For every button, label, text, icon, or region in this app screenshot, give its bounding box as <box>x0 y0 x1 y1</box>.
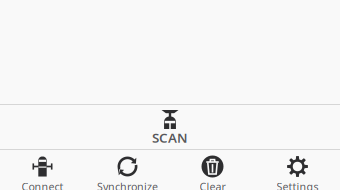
staticText: SCAN <box>152 129 188 146</box>
button[interactable]: Connect <box>0 150 85 190</box>
button[interactable]: Clear <box>170 150 255 190</box>
button[interactable]: Settings <box>255 150 340 190</box>
staticText: Synchronize <box>97 179 158 190</box>
button[interactable]: SCAN <box>0 104 340 150</box>
button[interactable]: Synchronize <box>85 150 170 190</box>
staticText: Connect <box>21 179 63 190</box>
staticText: Clear <box>199 179 225 190</box>
staticText: Settings <box>276 179 318 190</box>
